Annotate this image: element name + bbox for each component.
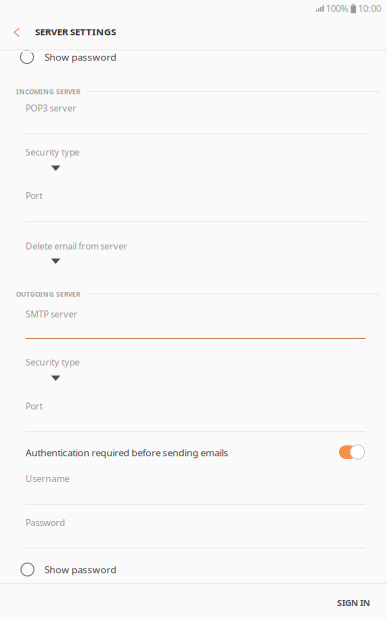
staticText: SIGN IN xyxy=(337,596,370,608)
staticText: Port xyxy=(26,400,43,412)
button[interactable]: Show password xyxy=(21,562,116,576)
staticText: SERVER SETTINGS xyxy=(35,25,116,38)
button[interactable]: Back xyxy=(8,17,28,48)
staticText: Show password xyxy=(44,563,116,576)
staticText: Authentication required before sending e… xyxy=(26,446,229,459)
staticText: Port xyxy=(26,189,43,202)
staticText: Delete email from server xyxy=(26,240,128,252)
staticText: Security type xyxy=(26,146,80,158)
button[interactable]: Authentication required before sending e… xyxy=(339,445,364,460)
staticText: Password xyxy=(26,516,65,529)
staticText: Username xyxy=(26,472,70,485)
staticText: SMTP server xyxy=(26,308,78,320)
staticText: POP3 server xyxy=(26,102,77,114)
staticText: Show password xyxy=(44,50,116,64)
button[interactable]: Show password xyxy=(21,50,116,64)
button[interactable]: SIGN IN xyxy=(331,592,376,612)
staticText: INCOMING SERVER xyxy=(16,87,80,96)
staticText: OUTGOING SERVER xyxy=(16,289,80,299)
staticText: Security type xyxy=(26,356,80,368)
staticText: 100% xyxy=(326,2,349,15)
staticText: 10:00 xyxy=(358,2,381,15)
